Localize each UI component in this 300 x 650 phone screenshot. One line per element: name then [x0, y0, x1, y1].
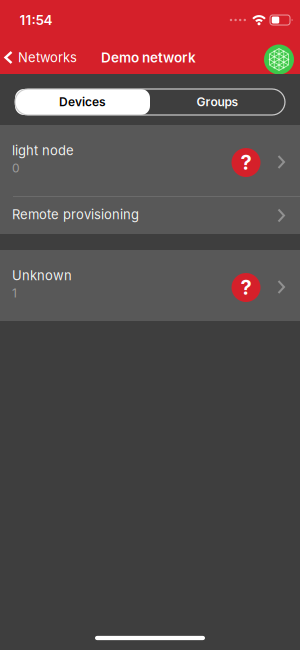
- button[interactable]: Mesh network status: [264, 44, 294, 74]
- staticText: ?: [240, 275, 251, 300]
- staticText: 0: [12, 161, 20, 175]
- button[interactable]: Back: [0, 50, 77, 65]
- button[interactable]: light node: [0, 125, 300, 196]
- staticText: Unknown: [12, 268, 72, 283]
- staticText: Networks: [18, 50, 77, 65]
- staticText: Remote provisioning: [12, 207, 139, 222]
- staticText: Devices: [59, 95, 106, 109]
- staticText: light node: [12, 143, 74, 158]
- staticText: 1: [12, 286, 17, 300]
- staticText: Groups: [196, 95, 238, 109]
- button[interactable]: Groups: [150, 89, 285, 115]
- button[interactable]: Unknown: [0, 250, 300, 321]
- staticText: Demo network: [101, 49, 196, 66]
- button[interactable]: Devices: [15, 89, 150, 115]
- staticText: ?: [240, 150, 251, 175]
- button[interactable]: Remote provisioning: [0, 197, 300, 234]
- staticText: 11:54: [19, 12, 52, 28]
